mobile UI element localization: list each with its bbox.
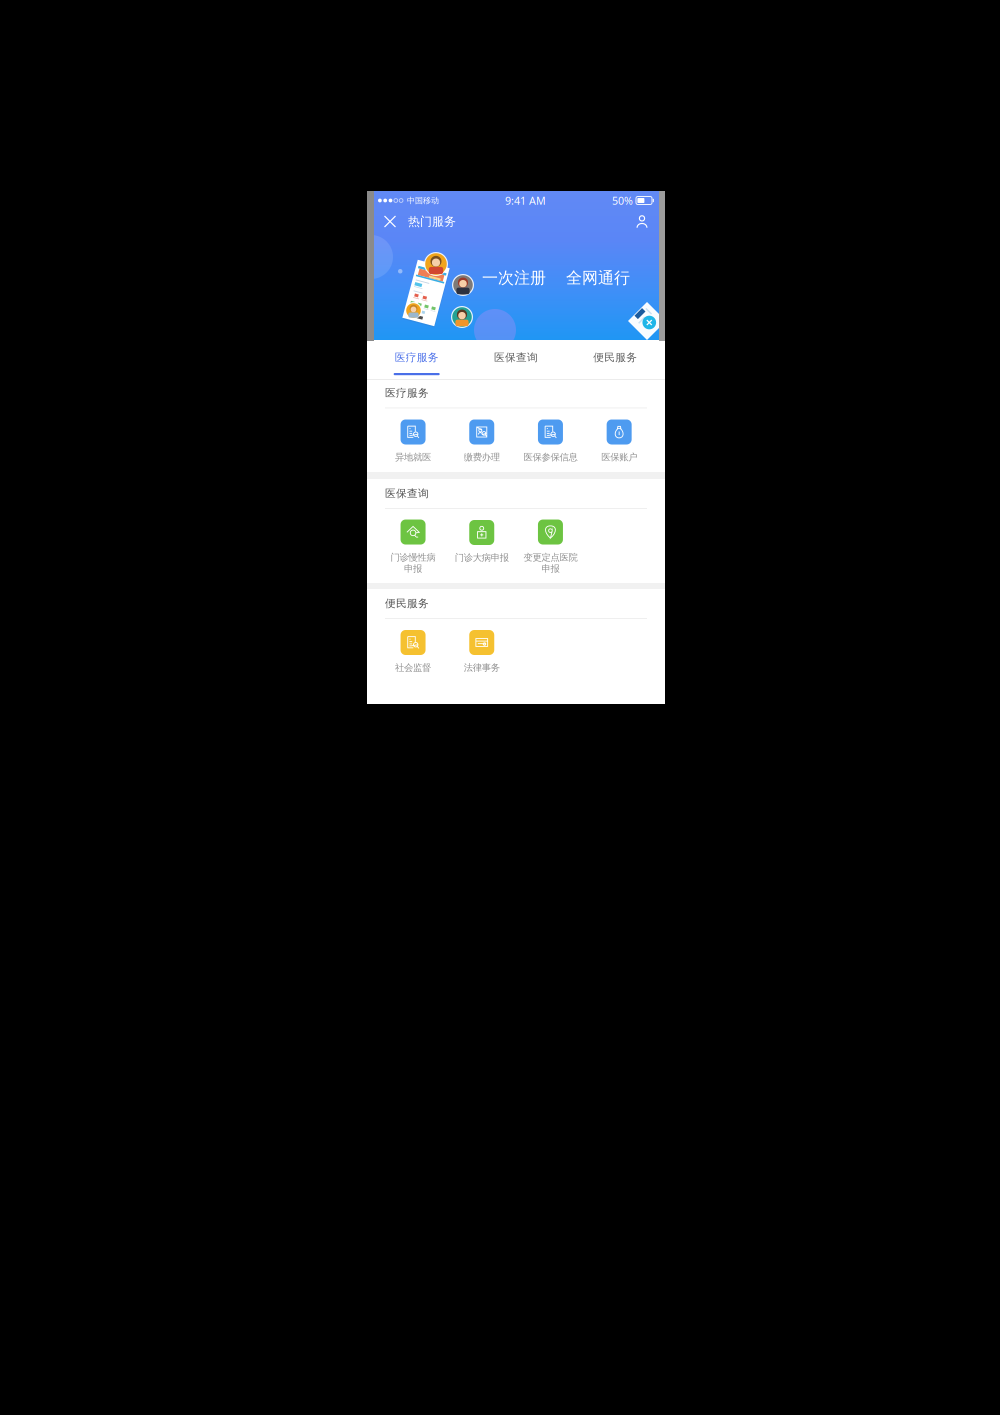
staticText: 医疗服务 (385, 386, 429, 399)
button[interactable]: 医保账户 (585, 419, 653, 473)
button[interactable]: 门诊慢性病 (379, 520, 447, 574)
staticText: 门诊慢性病 (391, 551, 436, 563)
staticText: 医保账户 (601, 451, 637, 463)
button[interactable]: 医保参保信息 (516, 419, 585, 473)
staticText: 50% (612, 193, 633, 208)
staticText: 异地就医 (395, 451, 431, 463)
staticText: 缴费办理 (464, 451, 500, 463)
staticText: 变更定点医院 (523, 551, 577, 563)
staticText: 医疗服务 (395, 351, 439, 364)
button[interactable]: 社会监督 (379, 630, 447, 684)
staticText: 社会监督 (395, 662, 431, 673)
staticText: 法律事务 (464, 662, 500, 673)
staticText: 热门服务 (408, 214, 456, 229)
staticText: 申报 (541, 563, 559, 574)
button[interactable]: 法律事务 (447, 630, 516, 684)
button[interactable]: 便民服务 (566, 340, 665, 379)
button[interactable]: 医保查询 (466, 340, 566, 379)
staticText: 便民服务 (385, 597, 429, 610)
button[interactable]: Close (379, 210, 401, 232)
staticText: 门诊大病申报 (455, 552, 509, 563)
staticText: 便民服务 (593, 351, 637, 364)
button[interactable]: 门诊大病申报 (447, 520, 516, 574)
button[interactable]: 缴费办理 (447, 419, 516, 473)
staticText: 医保查询 (494, 351, 538, 364)
staticText: 医保参保信息 (523, 451, 577, 463)
staticText: 一次注册 全网通行 (482, 268, 630, 288)
button[interactable]: 变更定点医院 (516, 520, 585, 574)
button[interactable]: Account (631, 210, 653, 232)
staticText: 申报 (404, 563, 422, 574)
staticText: 9:41 AM (505, 193, 546, 208)
button[interactable]: 异地就医 (379, 419, 447, 473)
button[interactable]: 医疗服务 (367, 340, 466, 379)
staticText: 医保查询 (385, 487, 429, 500)
staticText: 中国移动 (407, 196, 439, 205)
